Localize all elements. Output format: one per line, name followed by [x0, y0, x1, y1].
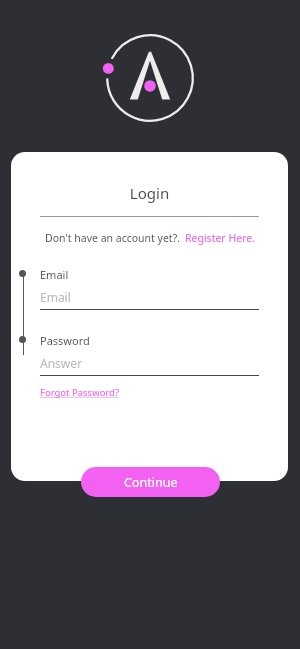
- staticText: Password: [40, 333, 90, 348]
- staticText: Continue: [124, 474, 178, 491]
- staticText: Answer: [40, 355, 82, 371]
- staticText: Don't have an account yet?.: [45, 231, 181, 245]
- button[interactable]: Email: [40, 289, 259, 305]
- button[interactable]: Register Here.: [185, 231, 255, 245]
- staticText: Email: [40, 289, 71, 305]
- staticText: Email: [40, 267, 69, 282]
- button[interactable]: Continue: [81, 467, 220, 497]
- button[interactable]: Answer: [40, 355, 259, 371]
- staticText: Login: [11, 183, 288, 203]
- staticText: Forgot Password?: [40, 386, 120, 399]
- button[interactable]: Forgot Password?: [40, 386, 120, 399]
- staticText: Register Here.: [185, 231, 255, 245]
